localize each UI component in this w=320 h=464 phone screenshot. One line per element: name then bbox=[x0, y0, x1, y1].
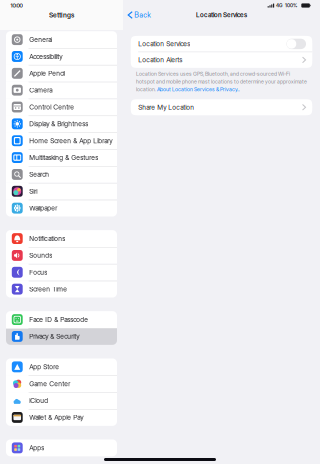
staticText: Wallet & Apple Pay bbox=[29, 413, 83, 421]
button[interactable]: Home Screen & App Library bbox=[6, 132, 117, 149]
staticText: Camera bbox=[29, 86, 52, 94]
staticText: Home Screen & App Library bbox=[29, 137, 112, 145]
button[interactable]: Notifications bbox=[6, 230, 117, 247]
button[interactable]: Game Center bbox=[6, 375, 117, 392]
button[interactable]: Location Alerts bbox=[131, 52, 312, 68]
button[interactable]: Display & Brightness bbox=[6, 115, 117, 132]
staticText: Focus bbox=[29, 268, 47, 276]
staticText: Multitasking & Gestures bbox=[29, 153, 98, 162]
staticText: Game Center bbox=[29, 380, 70, 388]
button[interactable]: Screen Time bbox=[6, 281, 117, 298]
staticText: 10:00 bbox=[10, 2, 22, 9]
staticText: Settings bbox=[49, 11, 74, 19]
staticText: Accessibility bbox=[29, 52, 62, 60]
staticText: General bbox=[29, 36, 52, 44]
staticText: Back bbox=[134, 11, 151, 19]
staticText: Wallpaper bbox=[29, 204, 57, 212]
staticText: iCloud bbox=[29, 396, 48, 405]
staticText: Control Centre bbox=[29, 103, 74, 111]
staticText: App Store bbox=[29, 363, 59, 371]
staticText: Location Services uses GPS, Bluetooth, a… bbox=[136, 70, 290, 77]
staticText: hotspot and mobile phone mast locations … bbox=[136, 78, 307, 85]
staticText: Privacy & Security bbox=[29, 332, 79, 340]
staticText: About Location Services & Privacy... bbox=[156, 86, 240, 92]
staticText: Display & Brightness bbox=[29, 120, 88, 128]
button[interactable]: Apps bbox=[6, 439, 117, 456]
button[interactable]: Back bbox=[123, 0, 155, 30]
button[interactable]: Camera bbox=[6, 82, 117, 99]
button[interactable]: App Store bbox=[6, 358, 117, 375]
button[interactable]: iCloud bbox=[6, 392, 117, 409]
button[interactable]: Siri bbox=[6, 183, 117, 200]
button[interactable]: Share My Location bbox=[131, 99, 312, 115]
staticText: Notifications bbox=[29, 234, 65, 243]
button[interactable]: Apple Pencil bbox=[6, 65, 117, 82]
staticText: Share My Location bbox=[138, 103, 194, 111]
button[interactable]: Face ID & Passcode bbox=[6, 311, 117, 328]
staticText: Screen Time bbox=[29, 285, 67, 293]
staticText: Location Alerts bbox=[138, 56, 182, 64]
staticText: Apple Pencil bbox=[29, 69, 65, 77]
button[interactable]: Wallet & Apple Pay bbox=[6, 409, 117, 426]
button[interactable]: Location Services bbox=[286, 39, 306, 49]
staticText: 4G bbox=[276, 3, 283, 8]
button[interactable]: Focus bbox=[6, 264, 117, 281]
staticText: Location Services bbox=[138, 40, 190, 48]
button[interactable]: General bbox=[6, 31, 117, 48]
button[interactable]: Wallpaper bbox=[6, 200, 117, 217]
staticText: Sounds bbox=[29, 251, 52, 259]
staticText: Siri bbox=[29, 187, 37, 195]
staticText: Search bbox=[29, 170, 49, 178]
staticText: location. bbox=[136, 86, 156, 92]
staticText: Face ID & Passcode bbox=[29, 315, 88, 324]
staticText: Location Services bbox=[196, 11, 247, 19]
button[interactable]: Accessibility bbox=[6, 48, 117, 65]
button[interactable]: About Location Services & Privacy... bbox=[156, 86, 240, 92]
button[interactable]: Multitasking & Gestures bbox=[6, 149, 117, 166]
button[interactable]: Sounds bbox=[6, 247, 117, 264]
staticText: Apps bbox=[29, 444, 44, 452]
button[interactable]: Control Centre bbox=[6, 99, 117, 115]
button[interactable]: Search bbox=[6, 166, 117, 183]
button[interactable]: Privacy & Security bbox=[6, 328, 117, 345]
staticText: 100% bbox=[285, 3, 297, 8]
